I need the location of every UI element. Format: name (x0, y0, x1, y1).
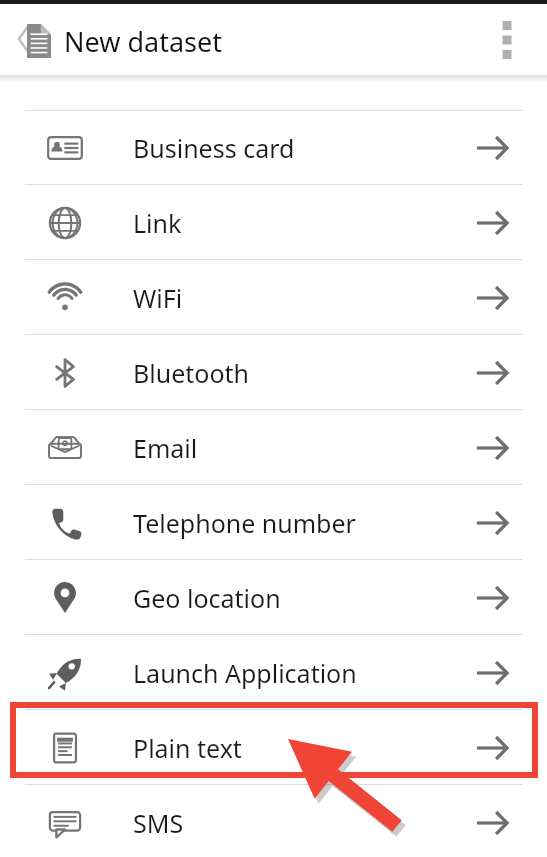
staticText: Bluetooth (133, 356, 250, 390)
button[interactable]: SMS (0, 785, 547, 857)
staticText: WiFi (133, 281, 183, 315)
button[interactable]: More options (479, 10, 535, 70)
staticText: New dataset (64, 23, 223, 60)
staticText: Geo location (133, 581, 281, 615)
button[interactable]: Email (0, 410, 547, 485)
staticText: Launch Application (133, 656, 357, 690)
button[interactable]: Plain text (0, 710, 547, 785)
staticText: Business card (133, 131, 295, 165)
button[interactable]: Telephone number (0, 485, 547, 560)
staticText: Telephone number (133, 506, 356, 540)
staticText: Link (133, 206, 182, 240)
button[interactable]: Link (0, 185, 547, 260)
staticText: SMS (133, 806, 184, 840)
staticText: Email (133, 431, 198, 465)
button[interactable]: Geo location (0, 560, 547, 635)
staticText: Plain text (133, 731, 242, 765)
button[interactable]: Launch Application (0, 635, 547, 710)
button[interactable]: Business card (0, 110, 547, 185)
button[interactable]: Bluetooth (0, 335, 547, 410)
button[interactable]: WiFi (0, 260, 547, 335)
button[interactable]: Back (0, 15, 38, 63)
